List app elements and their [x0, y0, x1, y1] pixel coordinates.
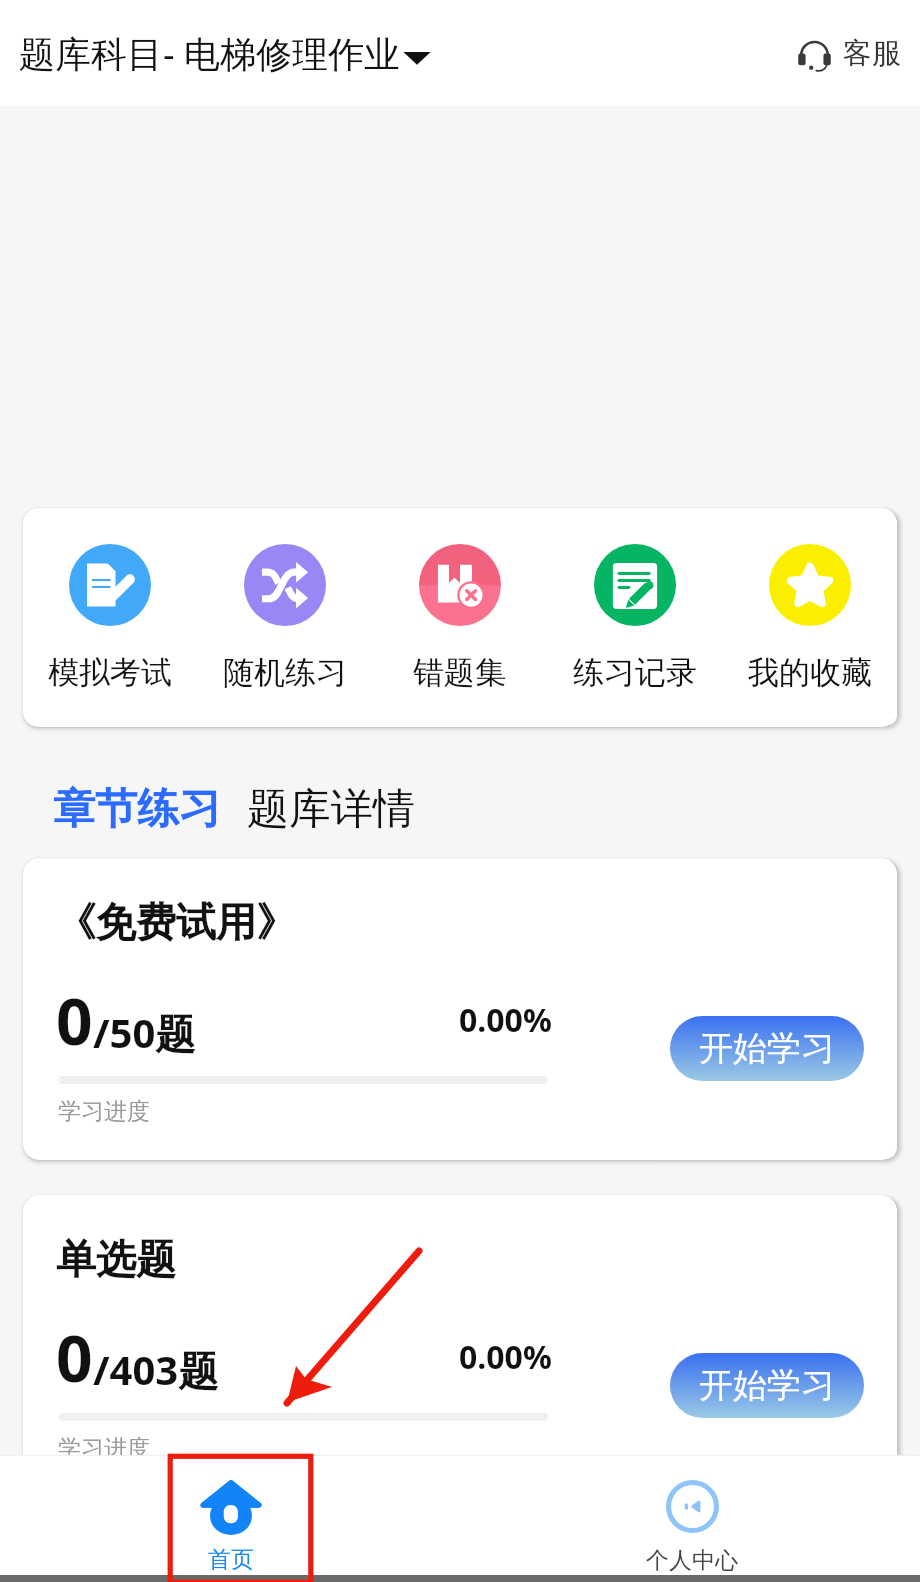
- button[interactable]: 模拟考试: [23, 544, 197, 692]
- other: 客服: [797, 37, 832, 72]
- staticText: 章节练习: [53, 783, 221, 836]
- staticText: 0.00%: [459, 998, 552, 1042]
- button[interactable]: 开始学习: [670, 1353, 864, 1418]
- button[interactable]: 客服: [797, 35, 901, 72]
- staticText: 0.00%: [459, 1335, 552, 1379]
- button[interactable]: 随机练习: [197, 544, 372, 692]
- button[interactable]: 开始学习: [670, 1016, 864, 1081]
- staticText: 题库科目- 电梯修理作业: [19, 29, 400, 78]
- staticText: 首页: [208, 1545, 254, 1574]
- staticText: 学习进度: [58, 1434, 150, 1463]
- button[interactable]: 章节练习: [53, 783, 221, 836]
- staticText: 个人中心: [646, 1546, 738, 1575]
- staticText: 单选题: [56, 1234, 176, 1284]
- staticText: 我的收藏: [748, 653, 872, 692]
- staticText: 开始学习: [699, 1027, 835, 1070]
- button[interactable]: 练习记录: [547, 544, 722, 692]
- button[interactable]: 我的收藏: [722, 544, 897, 692]
- staticText: 随机练习: [223, 653, 347, 692]
- button[interactable]: 个人中心: [646, 1481, 738, 1575]
- button[interactable]: 题库科目- 电梯修理作业: [19, 29, 434, 78]
- staticText: /403题: [93, 1342, 219, 1397]
- button[interactable]: 首页: [202, 1480, 260, 1574]
- staticText: 练习记录: [573, 653, 697, 692]
- staticText: 题库详情: [247, 783, 415, 836]
- staticText: /50题: [93, 1005, 196, 1060]
- staticText: 学习进度: [58, 1097, 150, 1126]
- staticText: 开始学习: [699, 1364, 835, 1407]
- staticText: 《免费试用》: [56, 897, 296, 947]
- staticText: 0: [56, 977, 93, 1064]
- staticText: 错题集: [413, 653, 506, 692]
- button[interactable]: 题库详情: [247, 783, 415, 836]
- staticText: 模拟考试: [48, 653, 172, 692]
- staticText: 客服: [843, 35, 901, 72]
- button[interactable]: 错题集: [372, 544, 547, 692]
- staticText: 0: [56, 1314, 93, 1401]
